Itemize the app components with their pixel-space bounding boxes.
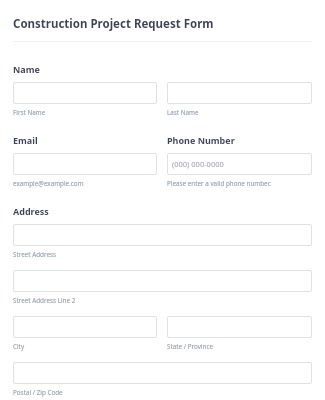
staticText: Phone Number [167,134,235,146]
staticText: (000) 000-0000 [172,159,224,169]
staticText: Address [13,205,49,217]
staticText: example@example.com [13,179,84,188]
staticText: Name [13,63,40,75]
staticText: City [13,342,25,351]
staticText: Street Address Line 2 [13,296,76,305]
staticText: Construction Project Request Form [13,16,214,32]
button[interactable] [13,316,157,338]
button[interactable] [13,82,157,104]
staticText: Email [13,134,38,146]
button[interactable] [13,270,312,292]
staticText: State / Province [167,342,213,351]
staticText: Postal / Zip Code [13,388,63,397]
button[interactable] [167,82,312,104]
staticText: Street Address [13,250,57,259]
staticText: First Name [13,108,46,117]
staticText: Last Name [167,108,199,117]
button[interactable] [13,224,312,246]
staticText: Please enter a valid phone number. [167,179,271,188]
button[interactable] [13,362,312,384]
button[interactable] [167,316,312,338]
button[interactable]: (000) 000-0000 [167,153,312,175]
button[interactable] [13,153,157,175]
